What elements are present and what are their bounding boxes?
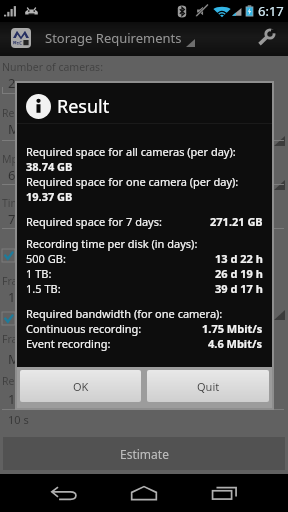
staticText: 500 GB: [26,251,66,266]
staticText: 6 [8,166,16,184]
staticText: 1 TB: [26,266,52,281]
staticText: Required space for one camera (per day): [26,174,239,189]
staticText: 19.37 GB [26,189,73,204]
staticText: 271.21 GB [210,214,263,229]
staticText: Result [57,94,110,119]
staticText: 26 d 19 h [215,266,263,281]
button[interactable]: OK [20,370,141,402]
staticText: 1 [8,390,16,408]
button[interactable]: Back [42,476,86,510]
staticText: 39 d 17 h [215,281,263,296]
staticText: Required space for 7 days: [26,214,162,229]
staticText: OK [73,379,89,394]
staticText: 1 [8,288,16,306]
staticText: 4.6 Mbit/s [208,336,263,351]
staticText: 2 [8,74,16,92]
staticText: Storage Requirements [45,29,182,47]
staticText: 38.74 GB [26,159,73,174]
staticText: Frames per second: [2,332,99,346]
staticText: Required space for all cameras (per day)… [26,144,236,159]
staticText: 1.5 TB: [26,281,61,296]
staticText: 1.75 Mbit/s [202,321,263,336]
staticText: Required bandwidth (for one camera): [26,306,223,321]
staticText: 13 d 22 h [215,251,263,266]
staticText: Event recording: [26,336,111,351]
button[interactable]: Settings [249,21,283,55]
staticText: 6:17 [258,2,284,20]
button[interactable]: Estimate [3,437,285,470]
button[interactable]: Home [122,476,166,510]
staticText: Recording time per disk (in days): [26,236,198,251]
button[interactable]: Quit [147,370,269,402]
staticText: Event recording [20,314,98,328]
staticText: 7 [8,210,16,228]
staticText: Time of recording: [2,196,93,210]
staticText: Number of cameras: [2,60,103,74]
staticText: Recording time: [2,374,80,388]
staticText: Resolution: [2,106,58,120]
staticText: Mpixels per frame: [2,152,95,166]
staticText: Quit [197,379,220,394]
staticText: Frames per second: [2,274,99,288]
button[interactable]: App icon [11,28,31,48]
staticText: Continuous recording: [26,321,142,336]
staticText: Estimate [120,446,169,462]
staticText: 10 s [8,412,29,427]
staticText: MEGA (1280x960) [8,120,115,138]
staticText: Continuous recording [20,251,128,265]
button[interactable]: Recent apps [204,476,248,510]
staticText: MEGA [8,350,45,368]
